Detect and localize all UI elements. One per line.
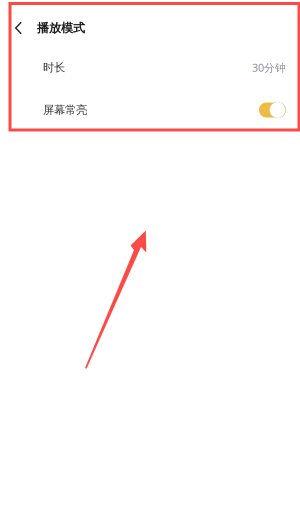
button[interactable]: 屏幕常亮: [0, 89, 300, 131]
staticText: 屏幕常亮: [43, 103, 87, 117]
button[interactable]: 时长: [0, 46, 300, 89]
staticText: 播放模式: [37, 20, 85, 35]
staticText: 时长: [43, 60, 65, 75]
staticText: 30分钟: [252, 60, 286, 75]
button[interactable]: Back: [15, 11, 37, 45]
